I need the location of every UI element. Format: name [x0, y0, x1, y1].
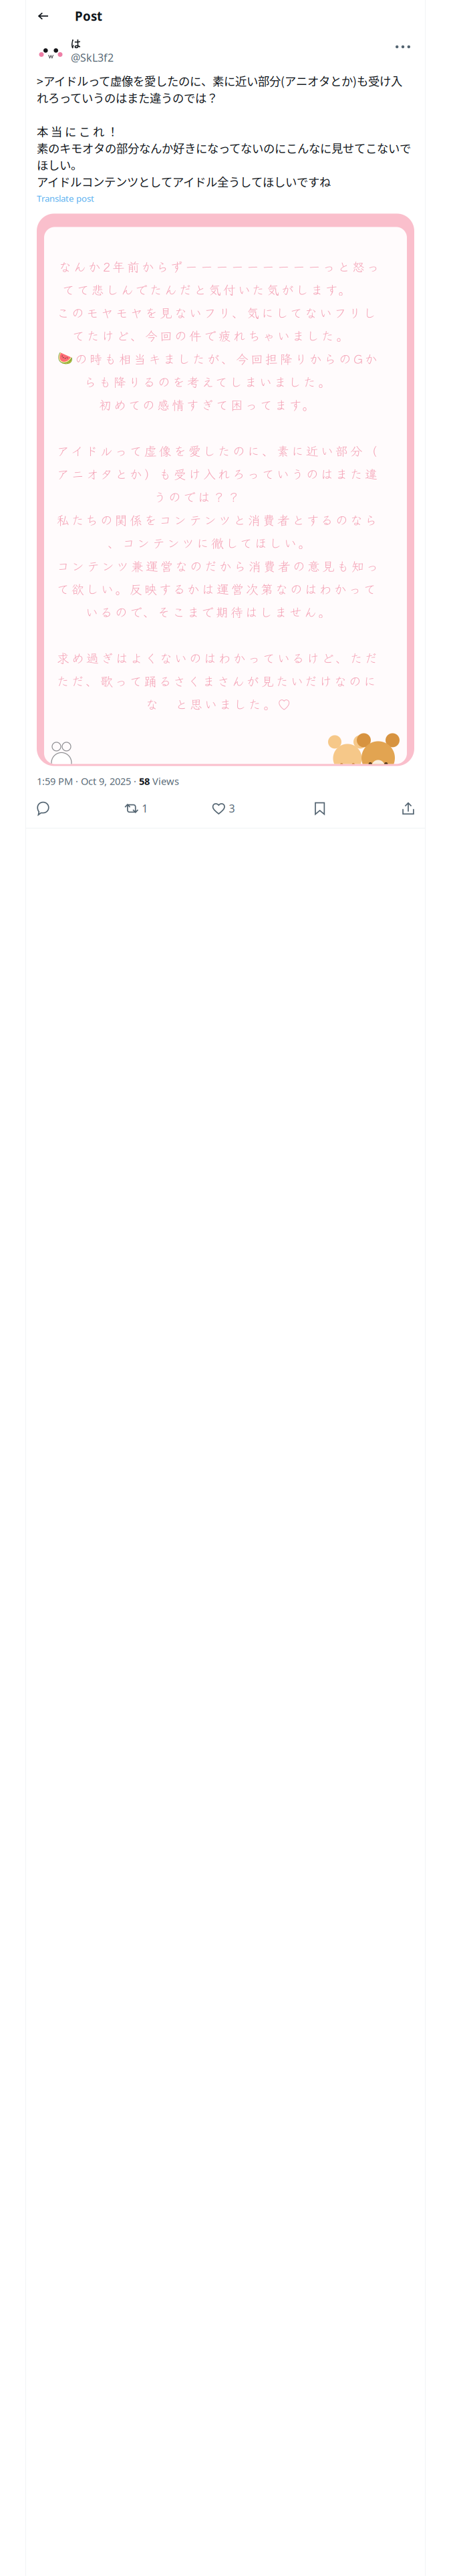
- staticText: て欲しい。反映するかは運営次第なのはわかって: [57, 579, 376, 597]
- button[interactable]: Share: [388, 797, 414, 820]
- staticText: てたけど、今回の件で疲れちゃいました。: [72, 326, 349, 344]
- button[interactable]: Profile photo: [37, 37, 65, 65]
- staticText: アイドルコンテンツとしてアイドル全うしてほしいですね: [37, 173, 331, 190]
- staticText: ただ、歌って踊るさくまさんが見たいだけなのに: [57, 671, 376, 690]
- staticText: うのでは？？: [154, 487, 240, 505]
- staticText: 初めての感情すぎて困ってます。: [99, 395, 315, 413]
- staticText: 素のキモオタの部分なんか好きになってないのにこんなに見せてこないで: [37, 139, 411, 156]
- staticText: は: [71, 37, 81, 50]
- staticText: れろっていうのはまた違うのでは？: [37, 89, 218, 106]
- staticText: 私たちの関係をコンテンツと消費者とするのなら: [57, 510, 378, 528]
- staticText: らも降りるのを考えてしまいました。: [84, 372, 331, 390]
- staticText: アイドルって虚像を愛したのに、素に近い部分（: [57, 441, 378, 459]
- button[interactable]: 3: [212, 797, 252, 820]
- staticText: なんか2年前からずーーーーーーーーーっと怒っ: [59, 257, 380, 275]
- staticText: 求め過ぎはよくないのはわかっているけど、ただ: [57, 648, 378, 667]
- staticText: Translate post: [37, 192, 94, 204]
- button[interactable]: More: [392, 37, 414, 57]
- button[interactable]: Back: [32, 1, 55, 31]
- staticText: アニオタとか）も受け入れろっていうのはまた違: [57, 464, 378, 482]
- button[interactable]: 1: [124, 797, 164, 820]
- staticText: 1:59 PM · Oct 9, 2025 ·: [37, 775, 139, 788]
- staticText: 3: [229, 801, 235, 815]
- staticText: Views: [150, 775, 179, 788]
- staticText: 本 当 に こ れ ！: [37, 123, 118, 139]
- staticText: 58: [139, 775, 150, 788]
- staticText: コンテンツ兼運営なのだから消費者の意見も知っ: [57, 556, 379, 574]
- staticText: Post: [75, 8, 102, 24]
- button[interactable]: Reply: [37, 797, 77, 820]
- staticText: てて悲しんでたんだと気付いた気がします。: [62, 280, 351, 298]
- staticText: な と思いました。♡: [146, 695, 291, 713]
- button[interactable]: Translate post: [37, 192, 94, 204]
- staticText: >アイドルって虚像を愛したのに、素に近い部分(アニオタとか)も受け入: [37, 72, 402, 89]
- staticText: このモヤモヤを見ないフリ、気にしてないフリし: [57, 303, 376, 321]
- staticText: 、コンテンツに徹してほしい。: [108, 533, 311, 551]
- staticText: ほしい。: [37, 156, 82, 173]
- staticText: いるので、そこまで期待はしません。: [86, 602, 331, 620]
- staticText: @SkL3f2: [71, 50, 114, 65]
- staticText: 1: [142, 801, 148, 815]
- staticText: 🍉の時も相当キましたが、今回担降りからのGか: [57, 349, 378, 367]
- button[interactable]: Bookmark: [300, 797, 340, 820]
